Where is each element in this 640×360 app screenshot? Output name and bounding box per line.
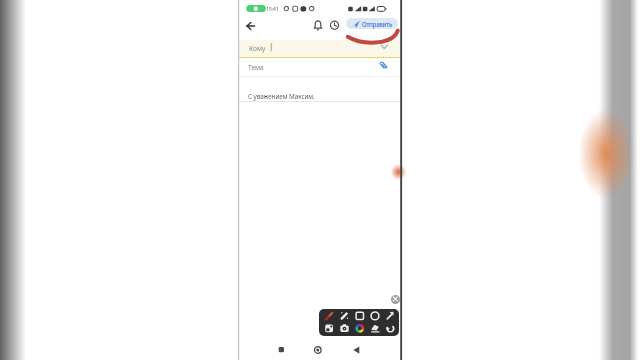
button[interactable] [338, 310, 352, 323]
button[interactable] [322, 310, 336, 323]
button[interactable]: Отправить [346, 18, 398, 29]
button[interactable] [368, 322, 382, 335]
button[interactable] [271, 340, 293, 358]
button[interactable] [239, 80, 400, 280]
button[interactable] [239, 59, 400, 76]
button[interactable] [391, 295, 400, 304]
button[interactable] [327, 18, 343, 34]
button[interactable] [338, 322, 352, 335]
button[interactable] [353, 310, 367, 323]
button[interactable] [345, 340, 367, 358]
button[interactable] [242, 18, 260, 34]
staticText: Кому [249, 44, 266, 53]
button[interactable] [239, 40, 400, 57]
button[interactable] [322, 322, 336, 335]
staticText: Тема [248, 63, 264, 72]
button[interactable] [383, 322, 397, 335]
button[interactable] [307, 340, 329, 358]
staticText: Отправить [362, 20, 393, 28]
staticText: 15:41 [266, 5, 279, 12]
button[interactable] [368, 310, 382, 323]
button[interactable] [353, 322, 367, 335]
button[interactable] [383, 310, 397, 323]
button[interactable] [310, 18, 326, 34]
staticText: С уважением Максим. [248, 92, 315, 101]
